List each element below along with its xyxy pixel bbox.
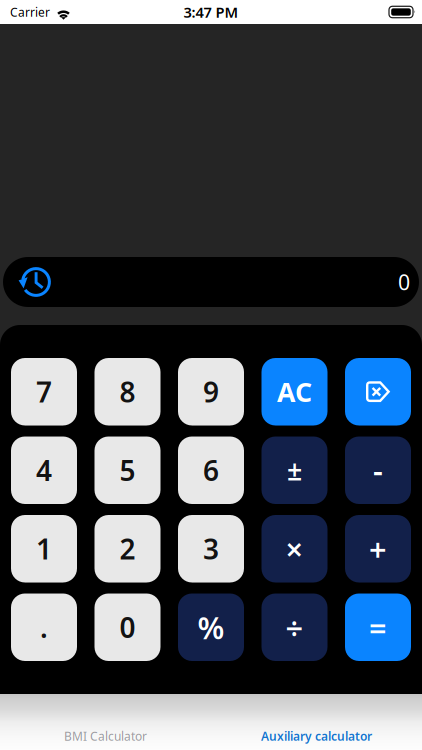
button[interactable]: ±	[261, 436, 327, 504]
button[interactable]: ÷	[261, 593, 327, 661]
staticText: ÷	[285, 607, 303, 648]
button[interactable]: 6	[178, 436, 244, 504]
button[interactable]: 3	[178, 515, 244, 582]
button[interactable]: %	[178, 593, 244, 661]
staticText: BMI Calculator	[64, 728, 147, 744]
button[interactable]: 8	[94, 358, 160, 425]
staticText: 6	[203, 452, 219, 489]
staticText: ±	[287, 452, 302, 488]
button[interactable]: 7	[11, 358, 77, 425]
staticText: Carrier	[10, 4, 50, 20]
button[interactable]: 5	[94, 436, 160, 504]
staticText: .	[40, 609, 48, 646]
staticText: +	[369, 528, 387, 569]
button[interactable]: AC	[261, 358, 327, 425]
staticText: Auxiliary calculator	[261, 728, 372, 744]
button[interactable]: +	[345, 515, 411, 582]
staticText: 4	[36, 452, 52, 489]
staticText: 7	[36, 373, 52, 410]
staticText: 9	[203, 373, 219, 410]
staticText: %	[197, 607, 224, 648]
button[interactable]: BMI Calculator	[0, 728, 211, 744]
staticText: 3	[203, 530, 219, 567]
button[interactable]: 0	[3, 257, 419, 307]
staticText: =	[369, 607, 387, 648]
button[interactable]: Backspace	[345, 358, 411, 425]
staticText: 8	[119, 373, 135, 410]
button[interactable]: 1	[11, 515, 77, 582]
staticText: AC	[277, 374, 312, 409]
button[interactable]: 2	[94, 515, 160, 582]
staticText: 0	[398, 268, 410, 296]
staticText: -	[373, 450, 383, 491]
button[interactable]: -	[345, 436, 411, 504]
button[interactable]: 9	[178, 358, 244, 425]
staticText: 5	[119, 452, 135, 489]
staticText: 2	[119, 530, 135, 567]
staticText: 0	[119, 609, 135, 646]
button[interactable]: ×	[261, 515, 327, 582]
button[interactable]: .	[11, 593, 77, 661]
staticText: ×	[285, 528, 303, 569]
button[interactable]: 4	[11, 436, 77, 504]
button[interactable]: 0	[94, 593, 160, 661]
button[interactable]: Auxiliary calculator	[211, 728, 422, 744]
staticText: 3:47 PM	[183, 2, 238, 22]
button[interactable]: =	[345, 593, 411, 661]
staticText: 1	[36, 530, 52, 567]
